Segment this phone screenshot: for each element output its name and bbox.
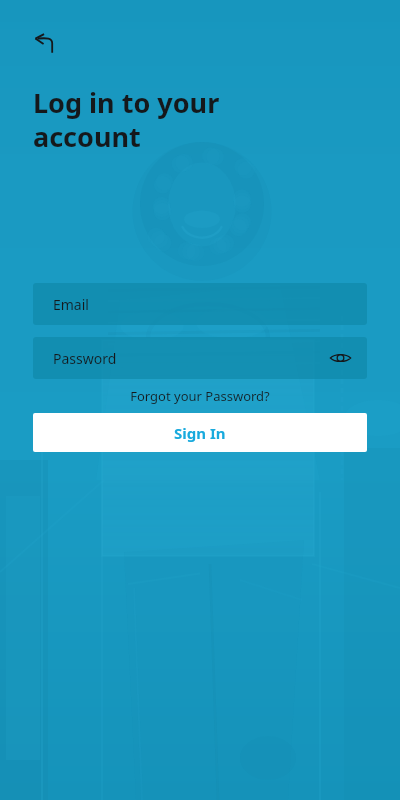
button[interactable]: Sign In [33, 413, 367, 452]
staticText: Password [53, 349, 117, 368]
button[interactable]: Show password [327, 345, 353, 371]
button[interactable]: Email [33, 283, 367, 325]
button[interactable]: Back [28, 27, 62, 61]
staticText: Email [53, 295, 89, 314]
button[interactable]: Password [33, 337, 367, 379]
button[interactable]: Forgot your Password? [33, 387, 367, 405]
staticText: Sign In [174, 423, 226, 443]
staticText: Log in to your account [33, 84, 220, 155]
staticText: Forgot your Password? [130, 387, 270, 405]
